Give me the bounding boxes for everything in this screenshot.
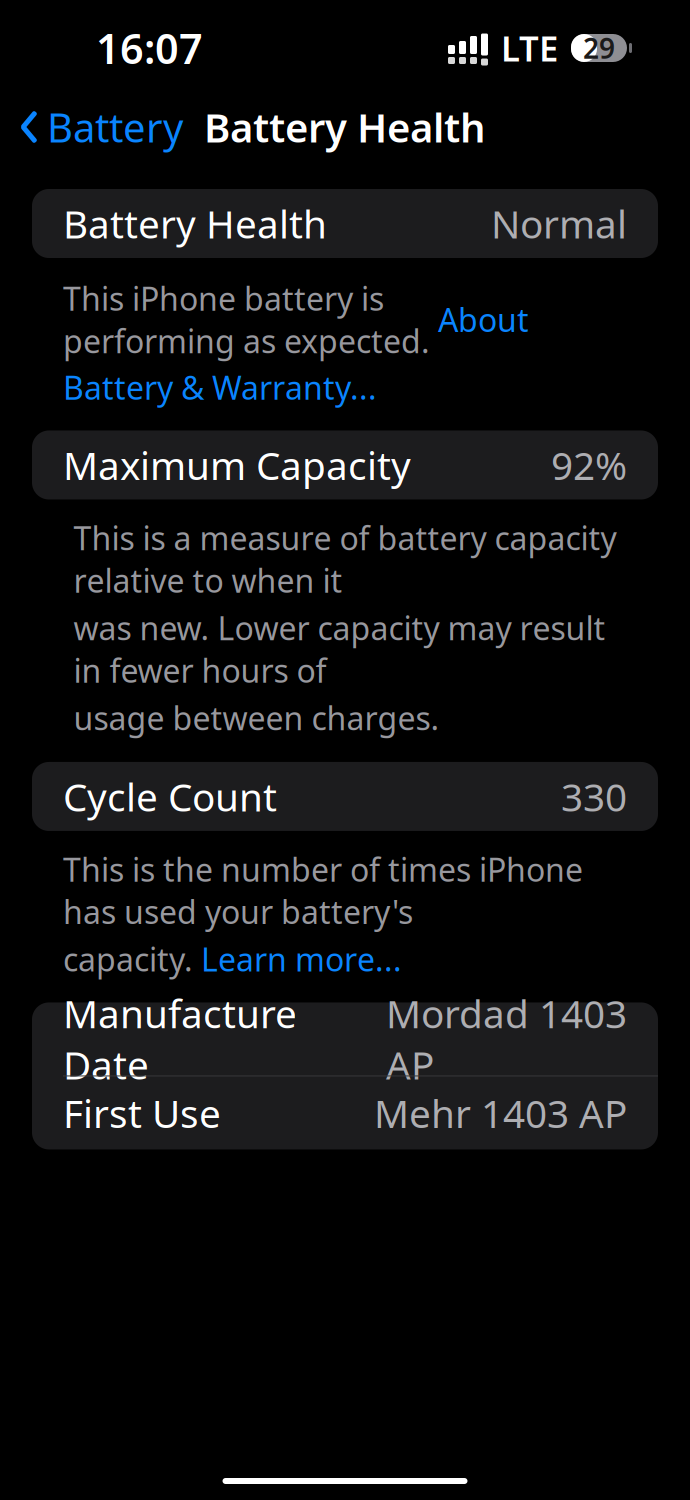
staticText: This iPhone battery is performing as exp… [63, 277, 438, 362]
staticText: 92% [551, 439, 627, 491]
button[interactable]: Learn more... [201, 938, 402, 980]
button[interactable]: About [438, 298, 529, 341]
button[interactable]: Battery [0, 92, 183, 161]
staticText: 330 [561, 771, 627, 822]
staticText: Battery Health [63, 198, 327, 249]
staticText: Cycle Count [63, 771, 277, 822]
staticText: Mordad 1403 AP [386, 988, 627, 1090]
staticText: This is a measure of battery capacity re… [73, 516, 616, 601]
staticText: usage between charges. [73, 696, 439, 739]
staticText: capacity. [63, 938, 201, 980]
staticText: 16:07 [96, 21, 203, 75]
button[interactable]: Cycle Count [32, 762, 658, 831]
staticText: Learn more... [201, 938, 402, 980]
staticText: LTE [501, 25, 558, 71]
staticText: Normal [491, 198, 627, 249]
staticText: Manufacture Date [63, 988, 297, 1090]
staticText: Battery Health [204, 100, 486, 153]
staticText: Battery [47, 100, 183, 153]
button[interactable]: Maximum Capacity [32, 430, 658, 499]
button[interactable]: Battery & Warranty... [63, 366, 627, 408]
button[interactable]: Manufacture Date [32, 1002, 658, 1075]
staticText: was new. Lower capacity may result in fe… [73, 606, 605, 691]
staticText: 29 [583, 29, 615, 67]
staticText: Maximum Capacity [63, 439, 411, 491]
button[interactable]: First Use [32, 1076, 658, 1149]
staticText: Mehr 1403 AP [374, 1087, 627, 1139]
button[interactable]: Battery Health [32, 189, 658, 258]
staticText: First Use [63, 1087, 221, 1139]
staticText: This is the number of times iPhone has u… [63, 848, 583, 933]
staticText: Battery & Warranty... [63, 366, 377, 408]
staticText: About [438, 298, 529, 341]
